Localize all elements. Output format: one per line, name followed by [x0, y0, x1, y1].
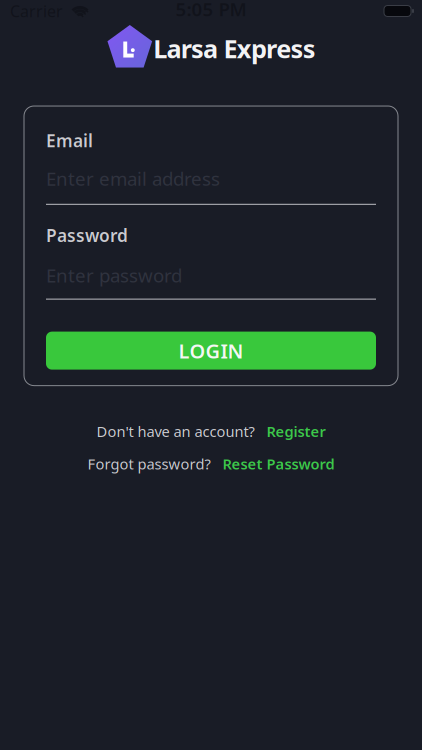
staticText: LOGIN — [178, 337, 243, 364]
staticText: Larsa Express — [153, 32, 316, 65]
button[interactable]: Register — [266, 422, 325, 441]
staticText: Forgot password? — [87, 454, 210, 474]
staticText: Carrier — [10, 0, 63, 22]
staticText: 5:05 PM — [175, 0, 246, 21]
staticText: Register — [266, 422, 325, 441]
button[interactable]: LOGIN — [46, 332, 376, 370]
staticText: Enter password — [46, 263, 182, 288]
staticText: Email — [46, 129, 93, 152]
staticText: Don't have an account? — [96, 422, 254, 441]
button[interactable]: Reset Password — [222, 454, 334, 474]
staticText: Password — [46, 224, 128, 247]
staticText: Reset Password — [222, 454, 334, 474]
staticText: Enter email address — [46, 166, 220, 191]
